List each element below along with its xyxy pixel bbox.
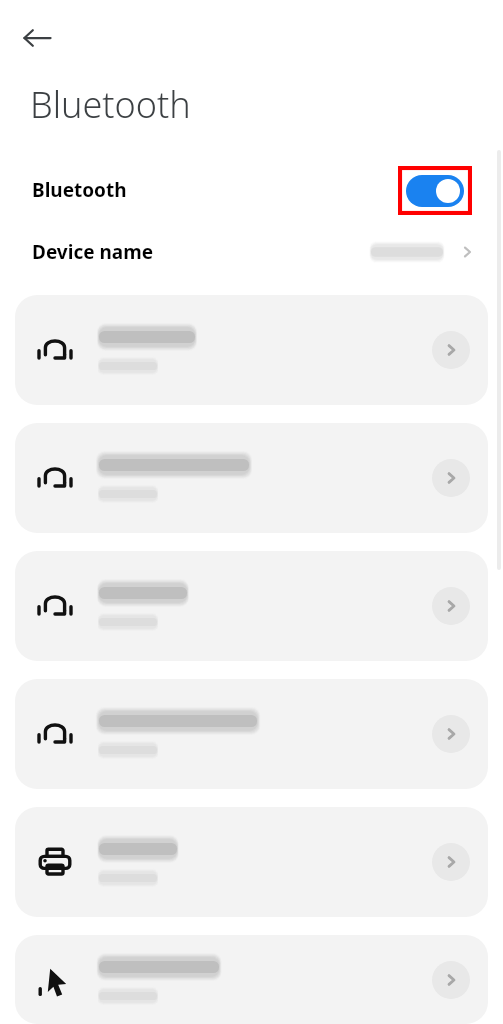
button[interactable]: Bluetooth: [0, 159, 503, 221]
button[interactable]: Device details: [15, 935, 488, 1024]
button[interactable]: Back: [22, 14, 70, 62]
button[interactable]: Bluetooth toggle: [398, 166, 472, 215]
button[interactable]: Device details: [432, 459, 470, 497]
button[interactable]: Device details: [15, 295, 488, 405]
button[interactable]: Device details: [432, 331, 470, 369]
button[interactable]: Device details: [432, 587, 470, 625]
button[interactable]: Device details: [15, 807, 488, 917]
button[interactable]: Device details: [432, 961, 470, 999]
button[interactable]: Device details: [432, 843, 470, 881]
button[interactable]: Device details: [432, 715, 470, 753]
button[interactable]: Device details: [15, 551, 488, 661]
staticText: Bluetooth: [32, 177, 127, 203]
button[interactable]: Device details: [15, 423, 488, 533]
staticText: Device name: [32, 239, 154, 265]
staticText: Bluetooth: [30, 80, 191, 129]
button[interactable]: Device name: [0, 221, 503, 283]
button[interactable]: Device details: [15, 679, 488, 789]
